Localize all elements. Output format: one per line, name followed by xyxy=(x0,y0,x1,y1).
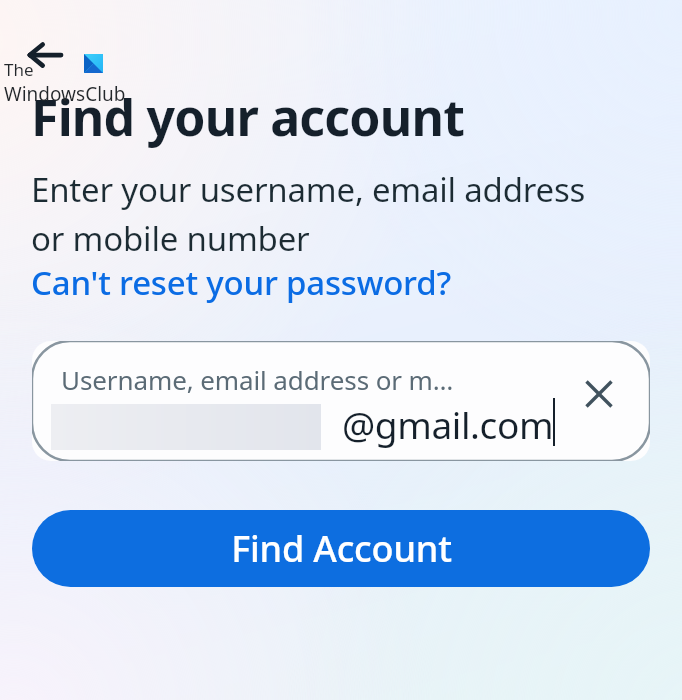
button[interactable]: Can't reset your password? xyxy=(31,260,452,305)
button[interactable]: Username, email address or m… xyxy=(32,341,650,461)
staticText: Enter your username, email address or mo… xyxy=(31,167,586,260)
staticText: Username, email address or m… xyxy=(61,362,454,397)
staticText: @gmail.com xyxy=(342,399,554,449)
staticText: Find Account xyxy=(231,524,452,573)
staticText: Find your account xyxy=(31,83,465,151)
staticText: The xyxy=(4,58,34,81)
staticText: Can't reset your password? xyxy=(31,260,452,305)
button[interactable]: Clear text xyxy=(572,367,626,421)
button[interactable]: Back xyxy=(22,33,68,79)
button[interactable]: Find Account xyxy=(32,510,650,587)
staticText: WindowsClub xyxy=(4,81,126,107)
